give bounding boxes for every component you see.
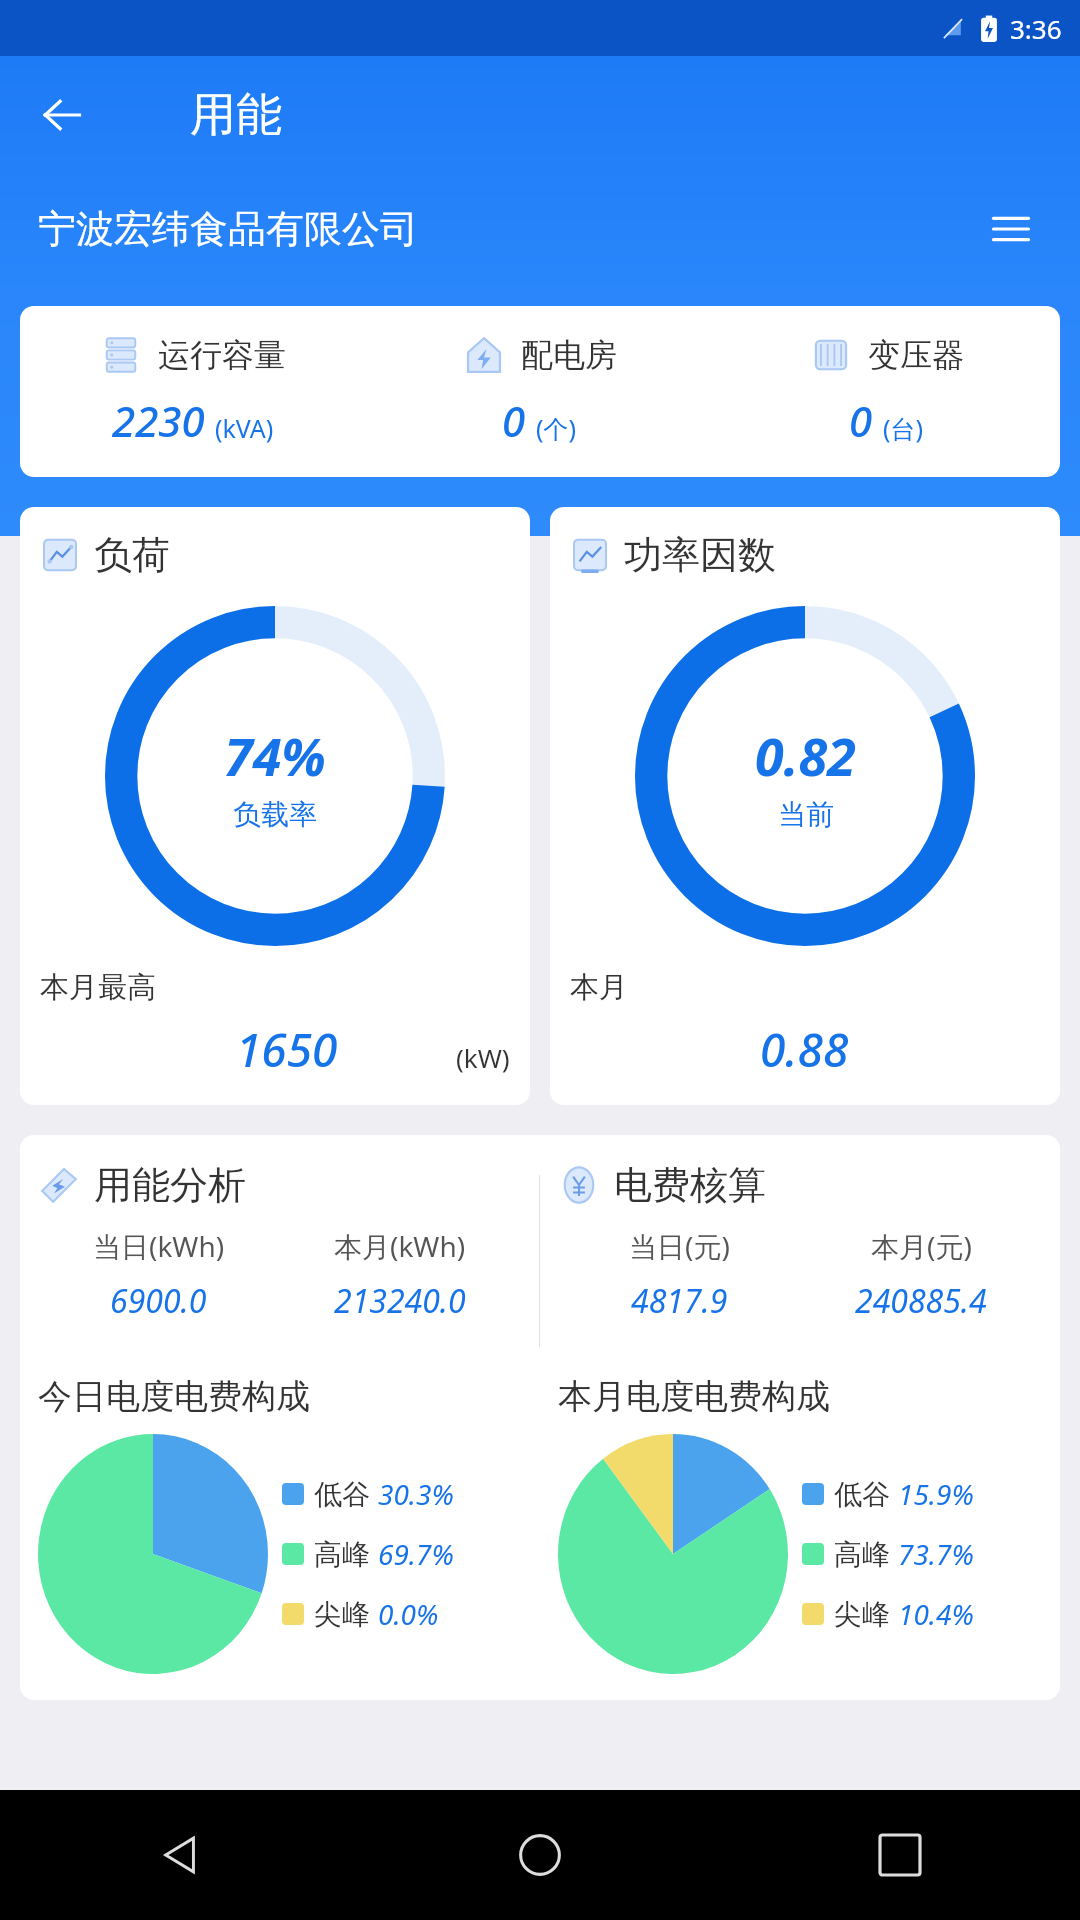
staticText: 高峰 xyxy=(834,1537,890,1572)
staticText: 74% xyxy=(224,720,326,791)
staticText: 负荷 xyxy=(94,531,170,579)
staticText: 尖峰 xyxy=(314,1597,370,1632)
staticText: 240885.4 xyxy=(855,1279,987,1323)
staticText: 电费核算 xyxy=(614,1161,766,1209)
staticText: 3:36 xyxy=(1010,11,1062,46)
button[interactable]: Back xyxy=(30,83,94,147)
staticText: 2230 xyxy=(112,392,205,449)
staticText: 用能分析 xyxy=(94,1161,246,1209)
staticText: 本月(元) xyxy=(871,1227,972,1265)
staticText: 15.9% xyxy=(898,1475,974,1513)
staticText: 213240.0 xyxy=(334,1279,466,1323)
staticText: 6900.0 xyxy=(110,1279,207,1323)
staticText: 高峰 xyxy=(314,1537,370,1572)
staticText: 本月 xyxy=(570,969,628,1006)
button[interactable]: Back xyxy=(0,1790,360,1920)
staticText: (台) xyxy=(883,411,924,445)
staticText: 低谷 xyxy=(314,1477,370,1512)
staticText: 本月最高 xyxy=(40,969,156,1006)
staticText: 本月(kWh) xyxy=(334,1227,466,1265)
staticText: 功率因数 xyxy=(624,531,776,579)
button[interactable]: 功率因数 xyxy=(550,507,1060,1105)
staticText: 0.82 xyxy=(755,720,856,791)
staticText: 当前 xyxy=(778,797,834,832)
button[interactable]: Menu xyxy=(980,198,1042,260)
staticText: (kVA) xyxy=(215,411,274,445)
staticText: 运行容量 xyxy=(158,335,286,375)
staticText: 今日电度电费构成 xyxy=(38,1375,310,1418)
staticText: 配电房 xyxy=(521,335,617,375)
button[interactable]: 负荷 xyxy=(20,507,530,1105)
button[interactable]: Home xyxy=(360,1790,720,1920)
staticText: 0.88 xyxy=(760,1018,849,1081)
staticText: 负载率 xyxy=(233,797,317,832)
staticText: 69.7% xyxy=(378,1535,454,1573)
staticText: 当日(kWh) xyxy=(93,1227,225,1265)
staticText: 10.4% xyxy=(898,1595,974,1633)
staticText: 0.0% xyxy=(378,1595,439,1633)
staticText: 宁波宏纬食品有限公司 xyxy=(38,205,418,253)
staticText: 当日(元) xyxy=(629,1227,730,1265)
staticText: (个) xyxy=(536,411,577,445)
staticText: 用能 xyxy=(190,86,282,144)
button[interactable]: 用能分析 xyxy=(20,1135,1060,1700)
staticText: 4817.9 xyxy=(631,1279,728,1323)
staticText: 73.7% xyxy=(898,1535,974,1573)
button[interactable]: 运行容量 xyxy=(20,306,1060,477)
staticText: 0 xyxy=(502,392,526,449)
button[interactable]: Recents xyxy=(720,1790,1080,1920)
staticText: 变压器 xyxy=(868,335,964,375)
staticText: 30.3% xyxy=(378,1475,454,1513)
staticText: 本月电度电费构成 xyxy=(558,1375,830,1418)
staticText: 0 xyxy=(849,392,873,449)
staticText: 低谷 xyxy=(834,1477,890,1512)
staticText: (kW) xyxy=(456,1040,510,1075)
staticText: 尖峰 xyxy=(834,1597,890,1632)
staticText: 1650 xyxy=(236,1018,338,1081)
